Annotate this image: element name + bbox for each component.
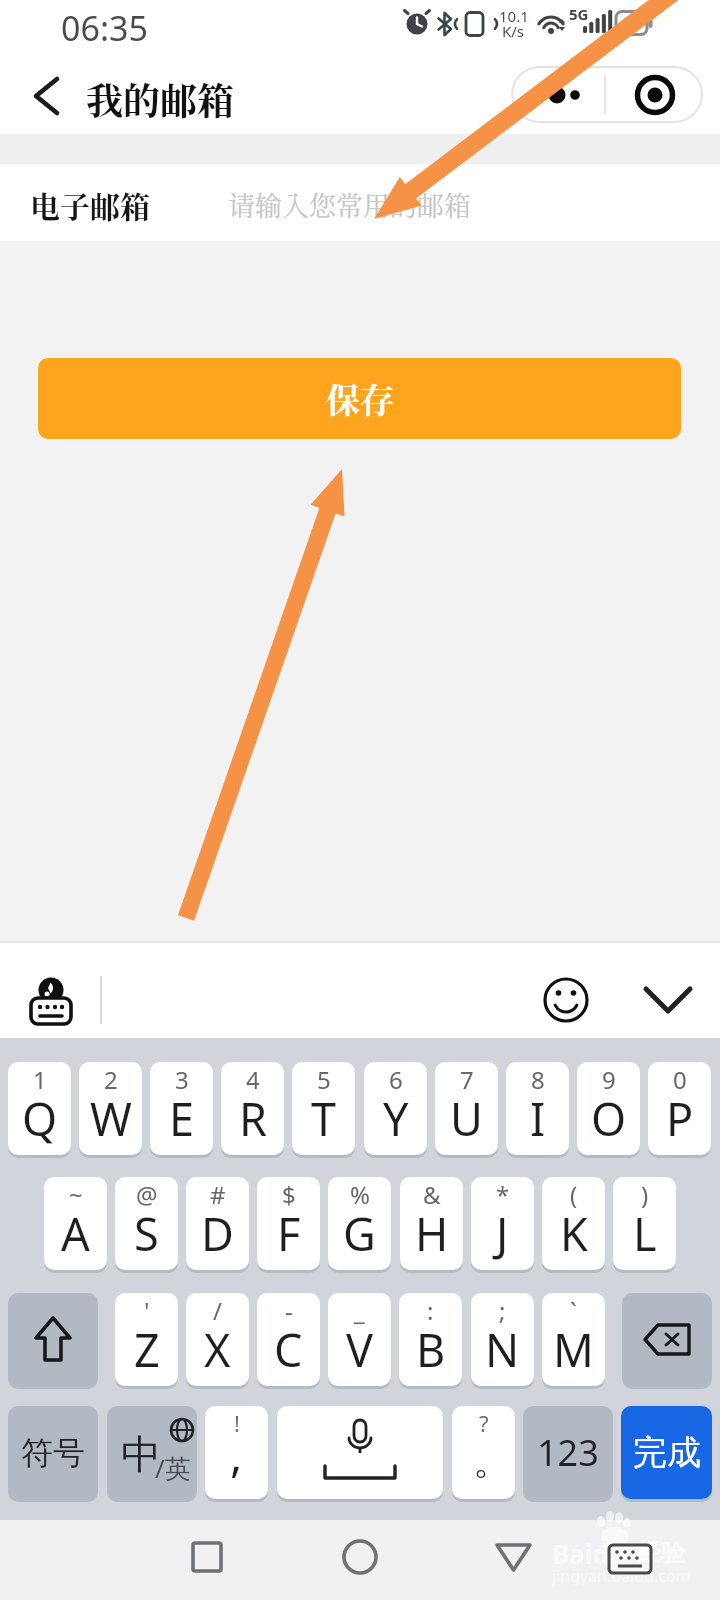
staticText: 10 (621, 14, 638, 33)
staticText: # (210, 1178, 226, 1211)
button[interactable] (14, 70, 74, 122)
button[interactable]: 1 (8, 1062, 71, 1155)
button[interactable]: # (186, 1177, 249, 1270)
staticText: S (134, 1203, 159, 1264)
button[interactable]: % (328, 1177, 391, 1270)
staticText: 123 (537, 1428, 599, 1477)
staticText: 9 (602, 1063, 616, 1096)
button[interactable] (607, 66, 703, 123)
button[interactable]: 中 (107, 1406, 197, 1499)
staticText: ` (570, 1294, 577, 1327)
staticText: T (311, 1088, 337, 1149)
staticText: 经验 (637, 1538, 685, 1568)
staticText: 2 (104, 1063, 118, 1096)
staticText: @ (136, 1178, 158, 1211)
staticText: 10.1 (499, 6, 529, 26)
staticText: 保存 (326, 374, 394, 423)
button[interactable]: ` (542, 1293, 605, 1386)
staticText: _ (354, 1294, 365, 1327)
staticText: $ (282, 1178, 296, 1211)
staticText: 7 (460, 1063, 474, 1096)
button[interactable]: _ (328, 1293, 391, 1386)
staticText: 6 (389, 1063, 403, 1096)
button[interactable] (330, 1528, 390, 1588)
button[interactable]: ! (205, 1406, 268, 1499)
button[interactable] (511, 66, 607, 123)
button[interactable]: 电子邮箱 (0, 164, 720, 241)
staticText: Y (383, 1088, 409, 1149)
button[interactable] (277, 1406, 443, 1499)
button[interactable]: 2 (79, 1062, 142, 1155)
staticText: ' (144, 1294, 150, 1327)
button[interactable]: 0 (648, 1062, 711, 1155)
staticText: ? (479, 1408, 489, 1438)
staticText: ( (570, 1178, 578, 1211)
button[interactable]: ; (471, 1293, 534, 1386)
staticText: 符号 (21, 1433, 85, 1473)
staticText: W (90, 1088, 132, 1149)
staticText: L (633, 1203, 657, 1264)
staticText: U (450, 1088, 483, 1149)
button[interactable]: : (399, 1293, 462, 1386)
staticText: C (274, 1319, 303, 1380)
staticText: Q (22, 1088, 58, 1149)
staticText: & (423, 1178, 441, 1211)
staticText: N (485, 1319, 520, 1380)
staticText: 完成 (633, 1431, 701, 1474)
button[interactable] (635, 970, 701, 1030)
button[interactable]: 6 (364, 1062, 427, 1155)
staticText: 5 (317, 1063, 331, 1096)
staticText: H (415, 1203, 449, 1264)
button[interactable] (14, 956, 100, 1024)
button[interactable] (622, 1293, 712, 1386)
button[interactable] (484, 1528, 544, 1588)
button[interactable]: & (400, 1177, 463, 1270)
button[interactable] (178, 1528, 238, 1588)
button[interactable]: 5 (292, 1062, 355, 1155)
staticText: V (346, 1319, 374, 1380)
button[interactable]: 保存 (38, 358, 681, 439)
staticText: M (553, 1319, 594, 1380)
staticText: 0 (673, 1063, 687, 1096)
staticText: - (285, 1294, 293, 1327)
staticText: O (591, 1088, 627, 1149)
staticText: ) (641, 1178, 649, 1211)
staticText: 请输入您常用的邮箱 (228, 185, 471, 224)
button[interactable]: * (471, 1177, 534, 1270)
staticText: R (239, 1088, 267, 1149)
staticText: 5G (569, 4, 589, 24)
button[interactable]: ' (115, 1293, 178, 1386)
staticText: 电子邮箱 (30, 183, 150, 226)
button[interactable]: - (257, 1293, 320, 1386)
button[interactable]: 7 (435, 1062, 498, 1155)
button[interactable]: ? (452, 1406, 515, 1499)
button[interactable]: $ (257, 1177, 320, 1270)
staticText: I (530, 1088, 546, 1149)
button[interactable]: ) (613, 1177, 676, 1270)
staticText: ! (234, 1408, 240, 1438)
button[interactable]: 3 (150, 1062, 213, 1155)
button[interactable] (535, 970, 595, 1030)
staticText: F (277, 1203, 301, 1264)
staticText: /英 (155, 1450, 191, 1486)
button[interactable]: 8 (506, 1062, 569, 1155)
staticText: K (560, 1203, 588, 1264)
staticText: Baidu (552, 1536, 626, 1571)
staticText: 1 (33, 1063, 47, 1096)
staticText: 中 (121, 1429, 161, 1479)
button[interactable]: ~ (44, 1177, 107, 1270)
button[interactable]: 123 (523, 1406, 613, 1499)
button[interactable]: 符号 (8, 1406, 98, 1499)
staticText: 4 (246, 1063, 260, 1096)
button[interactable]: 完成 (621, 1406, 712, 1499)
staticText: A (61, 1203, 90, 1264)
button[interactable] (8, 1293, 98, 1386)
staticText: % (350, 1178, 370, 1211)
button[interactable]: 4 (221, 1062, 284, 1155)
button[interactable]: / (186, 1293, 249, 1386)
button[interactable]: 9 (577, 1062, 640, 1155)
button[interactable]: ( (542, 1177, 605, 1270)
staticText: X (204, 1319, 231, 1380)
button[interactable]: @ (115, 1177, 178, 1270)
staticText: 06:35 (61, 5, 148, 51)
